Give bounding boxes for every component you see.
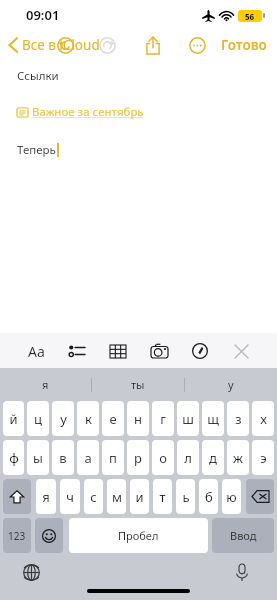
staticText: м bbox=[112, 488, 122, 506]
button[interactable]: р bbox=[127, 440, 149, 475]
button[interactable]: с bbox=[84, 479, 103, 514]
button[interactable]: ц bbox=[27, 401, 49, 436]
button[interactable]: в bbox=[52, 440, 74, 475]
button[interactable]: д bbox=[202, 440, 224, 475]
button[interactable]: у bbox=[52, 401, 74, 436]
staticText: у bbox=[60, 410, 67, 428]
button[interactable]: е bbox=[102, 401, 124, 436]
staticText: т bbox=[159, 488, 166, 506]
button[interactable]: г bbox=[152, 401, 174, 436]
button[interactable]: ч bbox=[60, 479, 80, 514]
staticText: 123 bbox=[8, 529, 26, 543]
staticText: Пробел bbox=[118, 528, 159, 543]
staticText: Aa bbox=[28, 342, 45, 361]
staticText: э bbox=[260, 449, 267, 467]
button[interactable]: Emoji bbox=[35, 518, 63, 553]
button[interactable]: к bbox=[77, 401, 99, 436]
staticText: у bbox=[228, 377, 234, 392]
button[interactable]: Text format bbox=[22, 337, 50, 365]
button[interactable]: н bbox=[127, 401, 149, 436]
button[interactable]: о bbox=[152, 440, 174, 475]
button[interactable]: я bbox=[0, 368, 91, 401]
button[interactable]: а bbox=[77, 440, 99, 475]
button[interactable]: Close keyboard bbox=[227, 337, 255, 365]
button[interactable]: я bbox=[36, 479, 56, 514]
staticText: г bbox=[160, 410, 166, 428]
staticText: Важное за сентябрь bbox=[32, 104, 144, 120]
button[interactable]: Ввод bbox=[212, 518, 274, 553]
button[interactable]: Готово bbox=[221, 36, 267, 54]
staticText: н bbox=[134, 410, 142, 428]
button[interactable]: п bbox=[102, 440, 124, 475]
button[interactable]: Важное за сентябрь bbox=[17, 104, 144, 120]
staticText: й bbox=[9, 410, 18, 428]
button[interactable]: э bbox=[252, 440, 274, 475]
staticText: ч bbox=[66, 488, 74, 506]
button[interactable]: з bbox=[227, 401, 249, 436]
staticText: ы bbox=[33, 449, 43, 467]
button[interactable]: Change keyboard bbox=[18, 559, 44, 585]
staticText: д bbox=[209, 449, 217, 467]
staticText: л bbox=[184, 449, 192, 467]
button[interactable]: More bbox=[184, 32, 210, 58]
button[interactable]: ы bbox=[27, 440, 49, 475]
button[interactable]: Пробел bbox=[69, 518, 208, 553]
staticText: е bbox=[109, 410, 117, 428]
staticText: ж bbox=[233, 449, 243, 467]
button[interactable]: 123 bbox=[3, 518, 31, 553]
button[interactable]: Dictation bbox=[229, 559, 255, 585]
staticText: р bbox=[134, 449, 142, 467]
button[interactable]: Checklist bbox=[63, 337, 91, 365]
button[interactable]: Share bbox=[140, 32, 166, 58]
button[interactable]: Все в iCloud bbox=[8, 36, 100, 54]
staticText: ц bbox=[34, 410, 42, 428]
staticText: Теперь bbox=[17, 142, 56, 158]
staticText: щ bbox=[207, 410, 219, 428]
button[interactable]: б bbox=[199, 479, 218, 514]
button[interactable]: у bbox=[185, 368, 277, 401]
button[interactable]: Shift bbox=[3, 479, 31, 514]
button[interactable]: й bbox=[3, 401, 24, 436]
staticText: п bbox=[109, 449, 117, 467]
staticText: 56 bbox=[245, 11, 255, 22]
staticText: Ссылки bbox=[17, 68, 59, 84]
button[interactable]: Redo bbox=[94, 32, 120, 58]
button[interactable]: Backspace bbox=[246, 479, 274, 514]
button[interactable]: ш bbox=[177, 401, 199, 436]
staticText: ты bbox=[131, 377, 145, 392]
staticText: в bbox=[59, 449, 67, 467]
staticText: ю bbox=[226, 488, 237, 506]
button[interactable]: т bbox=[153, 479, 172, 514]
staticText: з bbox=[235, 410, 242, 428]
staticText: ш bbox=[182, 410, 194, 428]
staticText: к bbox=[85, 410, 92, 428]
staticText: Готово bbox=[221, 36, 267, 54]
staticText: ф bbox=[9, 449, 19, 467]
staticText: 09:01 bbox=[26, 6, 60, 24]
button[interactable]: щ bbox=[202, 401, 224, 436]
staticText: о bbox=[159, 449, 167, 467]
staticText: с bbox=[90, 488, 97, 506]
button[interactable]: Camera bbox=[145, 337, 173, 365]
button[interactable]: ю bbox=[222, 479, 241, 514]
button[interactable]: Undo bbox=[52, 32, 78, 58]
button[interactable]: ф bbox=[3, 440, 24, 475]
button[interactable]: ты bbox=[92, 368, 184, 401]
staticText: Все в iCloud bbox=[22, 36, 100, 54]
staticText: Ввод bbox=[230, 528, 257, 543]
staticText: б bbox=[205, 488, 213, 506]
button[interactable]: м bbox=[107, 479, 126, 514]
staticText: я bbox=[42, 377, 49, 392]
button[interactable]: и bbox=[130, 479, 149, 514]
staticText: ь bbox=[182, 488, 190, 506]
staticText: а bbox=[84, 449, 92, 467]
staticText: я bbox=[42, 488, 50, 506]
button[interactable]: ь bbox=[176, 479, 195, 514]
staticText: х bbox=[260, 410, 267, 428]
staticText: и bbox=[135, 488, 144, 506]
button[interactable]: ж bbox=[227, 440, 249, 475]
button[interactable]: л bbox=[177, 440, 199, 475]
button[interactable]: Table bbox=[104, 337, 132, 365]
button[interactable]: х bbox=[252, 401, 274, 436]
button[interactable]: Markup bbox=[186, 337, 214, 365]
